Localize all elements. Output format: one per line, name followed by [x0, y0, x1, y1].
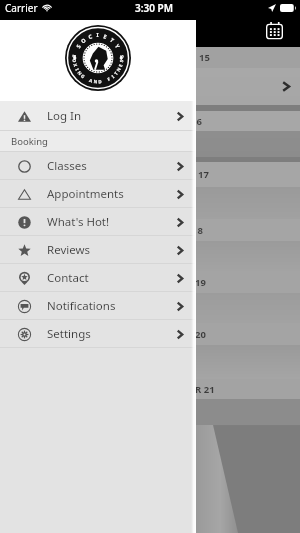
button[interactable] — [0, 399, 300, 533]
staticText: 19 — [195, 276, 206, 289]
staticText: 16 — [191, 115, 202, 128]
staticText: Appointments — [47, 186, 124, 202]
staticText: Log In — [47, 108, 82, 124]
button[interactable] — [0, 345, 300, 379]
staticText: What's Hot! — [47, 214, 110, 230]
button[interactable] — [0, 68, 300, 105]
staticText: Carrier — [5, 1, 38, 15]
button[interactable] — [0, 131, 300, 157]
button[interactable] — [0, 187, 300, 219]
staticText: 17 — [198, 168, 209, 181]
staticText: 3:30 PM — [135, 1, 173, 15]
staticText: Classes — [47, 158, 87, 174]
button[interactable]: Reviews — [0, 236, 196, 264]
staticText: 20 — [195, 328, 206, 341]
button[interactable]: Notifications — [0, 292, 196, 320]
button[interactable]: Settings — [0, 320, 196, 348]
staticText: Contact — [47, 270, 89, 286]
button[interactable] — [0, 241, 300, 271]
staticText: 18 — [192, 224, 203, 237]
staticText: R 21 — [195, 383, 215, 396]
button[interactable]: What's Hot! — [0, 208, 196, 236]
button[interactable]: Appointments — [0, 180, 196, 208]
staticText: Notifications — [47, 298, 116, 314]
staticText: Settings — [47, 326, 91, 342]
button[interactable]: Classes — [0, 152, 196, 180]
staticText: Reviews — [47, 242, 91, 258]
button[interactable]: Log In — [0, 101, 196, 131]
button[interactable]: Calendar — [262, 18, 286, 42]
staticText: 15 — [199, 51, 210, 64]
button[interactable]: Contact — [0, 264, 196, 292]
staticText: Booking — [11, 135, 48, 148]
button[interactable] — [0, 293, 300, 323]
